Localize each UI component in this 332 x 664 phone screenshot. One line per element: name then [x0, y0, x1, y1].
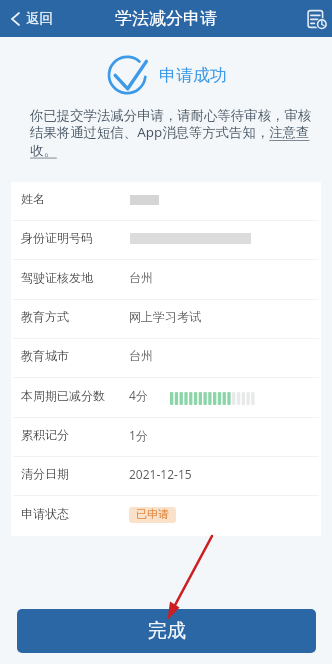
button[interactable]: 申请记录 — [301, 4, 332, 34]
button[interactable]: 累积记分 — [11, 418, 321, 457]
button[interactable]: 申请状态 — [11, 496, 321, 536]
staticText: 4分 — [129, 387, 148, 403]
staticText: 台州 — [129, 348, 153, 363]
staticText: 网上学习考试 — [129, 309, 201, 324]
staticText: 申请状态 — [21, 506, 69, 521]
staticText: 1分 — [129, 427, 148, 443]
staticText: 返回 — [26, 10, 53, 27]
button[interactable]: 清分日期 — [11, 457, 321, 496]
staticText: 教育城市 — [21, 348, 69, 363]
button[interactable]: 完成 — [17, 609, 316, 653]
button[interactable]: 身份证明号码 — [11, 221, 321, 260]
staticText: 本周期已减分数 — [21, 388, 105, 403]
button[interactable]: 教育方式 — [11, 300, 321, 339]
staticText: 学法减分申请 — [115, 8, 217, 29]
staticText: 累积记分 — [21, 427, 69, 442]
staticText: 清分日期 — [21, 466, 69, 481]
button[interactable]: 驾驶证核发地 — [11, 260, 321, 300]
button[interactable]: 姓名 — [11, 182, 321, 221]
button[interactable]: 返回 — [0, 4, 63, 33]
staticText: 台州 — [129, 270, 153, 285]
staticText: 已申请 — [136, 507, 169, 521]
staticText: 姓名 — [21, 191, 45, 206]
staticText: 驾驶证核发地 — [21, 270, 93, 285]
staticText: 教育方式 — [21, 309, 69, 324]
staticText: 身份证明号码 — [21, 230, 93, 245]
staticText: 2021-12-15 — [129, 466, 192, 482]
button[interactable]: 本周期已减分数 — [11, 378, 321, 418]
staticText: 你已提交学法减分申请，请耐心等待审核，审核结果将通过短信、App消息等方式告知，… — [30, 107, 312, 159]
staticText: 完成 — [148, 619, 186, 643]
staticText: 申请成功 — [159, 65, 227, 86]
button[interactable]: 教育城市 — [11, 339, 321, 378]
